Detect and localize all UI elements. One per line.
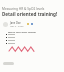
staticText: Measuring HR & SpO2 levels xyxy=(2,7,45,11)
staticText: Jane Doe xyxy=(10,21,21,25)
button[interactable]: Read more xyxy=(3,62,14,65)
staticText: Detail oriented training! xyxy=(2,11,58,17)
staticText: WHAT YOU WILL LEARN xyxy=(8,30,36,33)
staticText: Mar 2 · 4 min xyxy=(10,25,24,27)
